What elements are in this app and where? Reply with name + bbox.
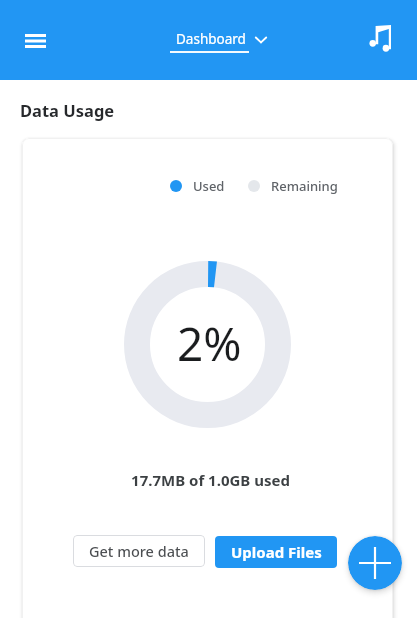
staticText: 2% (177, 312, 242, 375)
button[interactable]: Get more data (73, 535, 205, 567)
button[interactable]: Music (358, 18, 402, 62)
staticText: Get more data (89, 541, 189, 561)
button[interactable]: Dashboard (164, 24, 274, 58)
staticText: 17.7MB of 1.0GB used (25, 470, 393, 490)
staticText: Remaining (271, 177, 338, 195)
button[interactable]: Add (348, 536, 402, 590)
staticText: Dashboard (176, 30, 246, 48)
staticText: Data Usage (20, 99, 115, 121)
staticText: Upload Files (231, 542, 322, 562)
button[interactable]: Upload Files (215, 536, 337, 568)
button[interactable]: Menu (13, 19, 57, 63)
staticText: Used (193, 177, 225, 195)
